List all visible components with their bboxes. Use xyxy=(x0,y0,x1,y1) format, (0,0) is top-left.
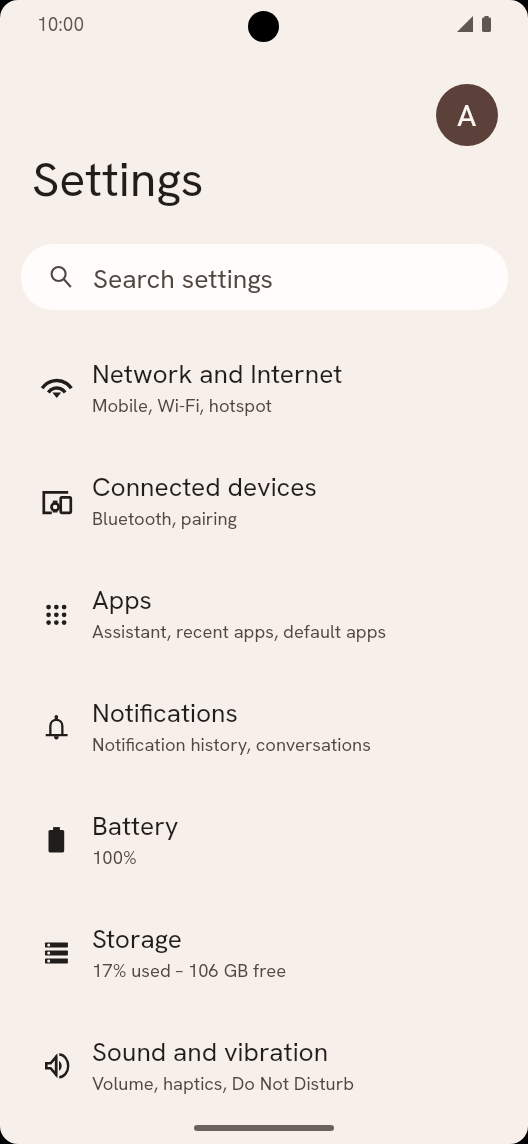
button[interactable]: Sound and vibration xyxy=(0,1008,528,1121)
button[interactable]: Storage xyxy=(0,895,528,1008)
staticText: 100% xyxy=(92,846,137,870)
staticText: Assistant, recent apps, default apps xyxy=(92,620,387,644)
staticText: Mobile, Wi-Fi, hotspot xyxy=(92,394,273,418)
staticText: Notification history, conversations xyxy=(92,733,371,757)
button[interactable]: Battery xyxy=(0,782,528,895)
staticText: Battery xyxy=(92,809,179,843)
button[interactable]: Account xyxy=(436,84,498,146)
button[interactable]: Apps xyxy=(0,556,528,669)
staticText: Volume, haptics, Do Not Disturb xyxy=(92,1072,355,1096)
staticText: Connected devices xyxy=(92,470,317,504)
staticText: 17% used – 106 GB free xyxy=(92,959,287,983)
staticText: Network and Internet xyxy=(92,357,343,391)
staticText: 10:00 xyxy=(37,12,85,37)
button[interactable]: Connected devices xyxy=(0,443,528,556)
staticText: Search settings xyxy=(93,261,273,296)
staticText: Apps xyxy=(92,583,152,617)
button[interactable]: Notifications xyxy=(0,669,528,782)
staticText: Sound and vibration xyxy=(92,1035,329,1069)
staticText: A xyxy=(457,95,477,135)
button[interactable]: Network and Internet xyxy=(0,330,528,443)
staticText: Storage xyxy=(92,922,183,956)
button[interactable]: Search settings xyxy=(21,244,508,310)
staticText: Notifications xyxy=(92,696,238,730)
staticText: Settings xyxy=(32,147,204,210)
staticText: Bluetooth, pairing xyxy=(92,507,238,531)
